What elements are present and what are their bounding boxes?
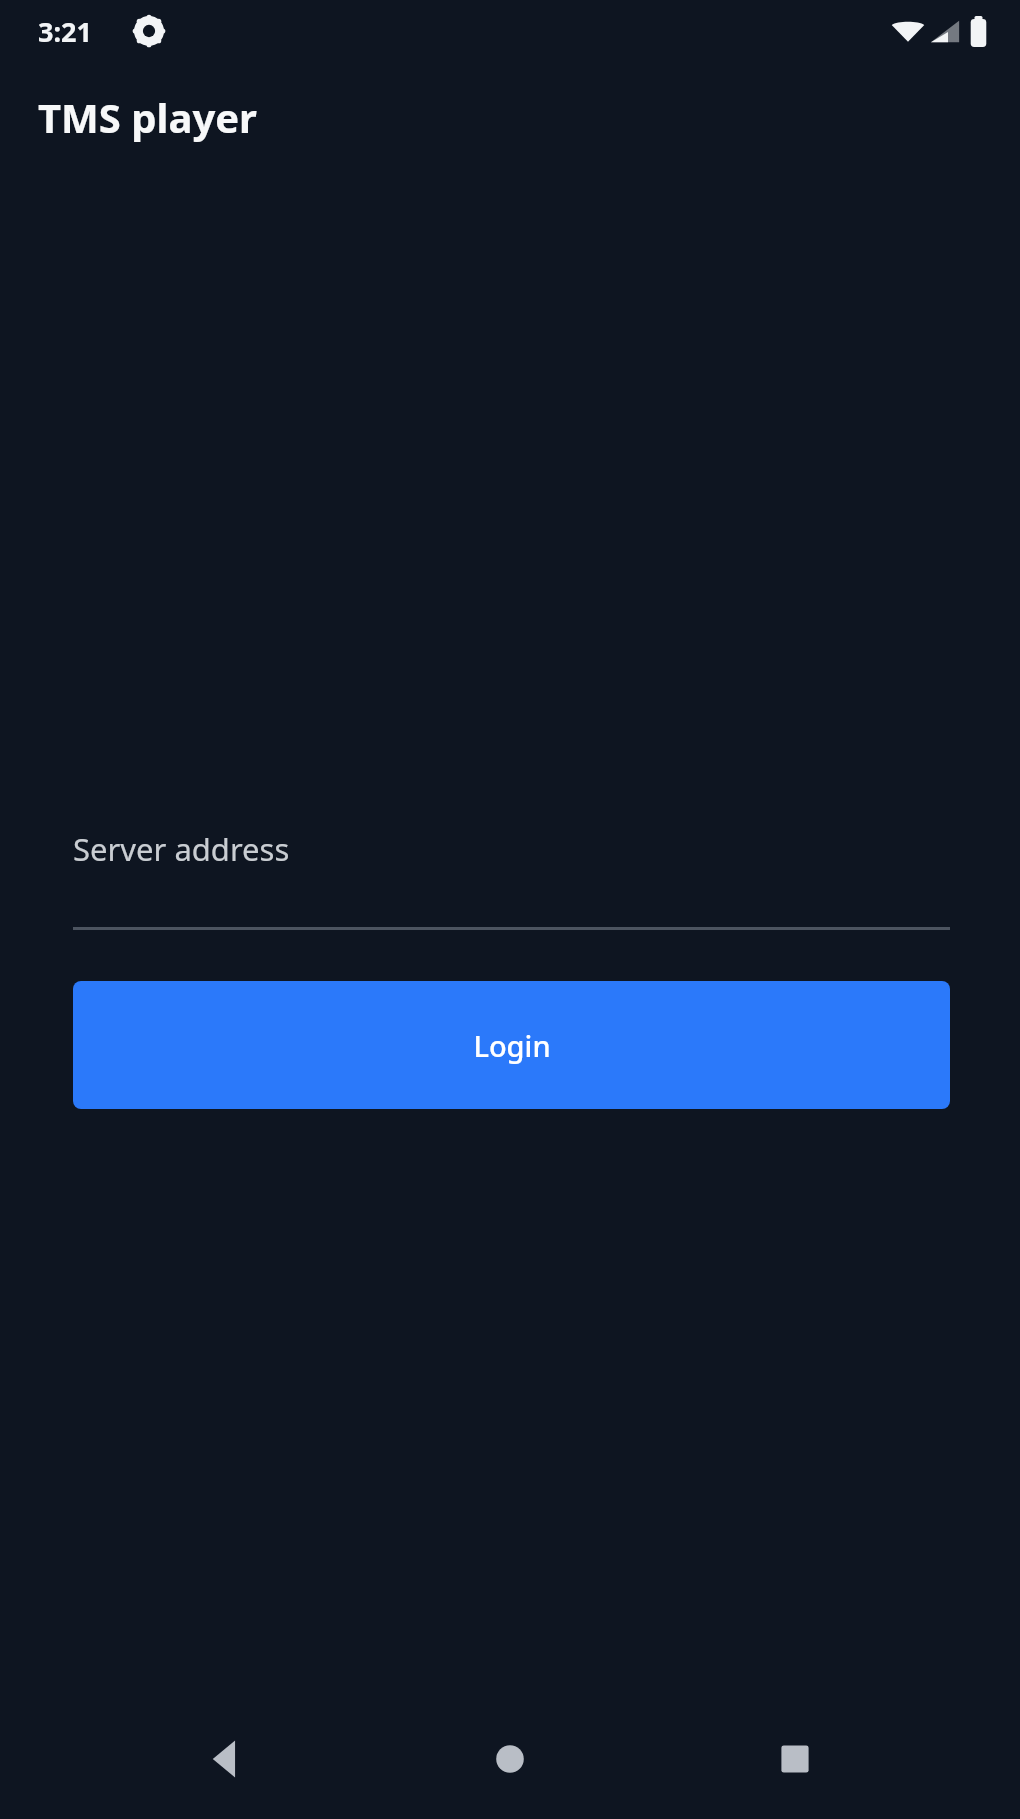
staticText: Login (473, 1026, 551, 1065)
staticText: Server address (73, 828, 290, 870)
staticText: TMS player (38, 90, 257, 144)
staticText: 3:21 (38, 13, 92, 50)
button[interactable]: Recent apps (748, 1712, 842, 1806)
button[interactable]: Home (463, 1712, 557, 1806)
button[interactable]: Login (73, 981, 950, 1109)
button[interactable]: Back (178, 1712, 272, 1806)
